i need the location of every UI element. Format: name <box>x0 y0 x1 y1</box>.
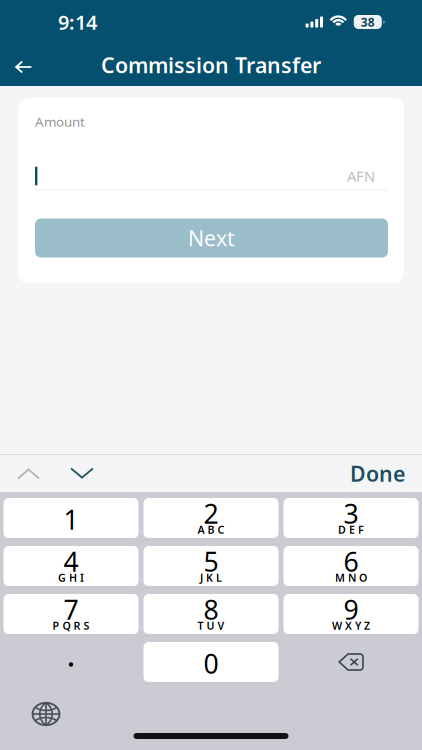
staticText: P Q R S <box>52 618 89 633</box>
button[interactable]: Delete <box>283 642 418 682</box>
button[interactable]: Previous field <box>0 455 55 492</box>
staticText: 4 <box>63 544 78 579</box>
button[interactable]: 1 <box>3 498 138 538</box>
staticText: 2 <box>203 496 218 531</box>
staticText: AFN <box>347 166 375 186</box>
staticText: T U V <box>197 618 224 633</box>
button[interactable]: 2 <box>143 498 278 538</box>
staticText: Done <box>350 459 405 488</box>
button[interactable]: 9 <box>283 594 418 634</box>
button[interactable]: 4 <box>3 546 138 586</box>
staticText: 7 <box>63 592 78 627</box>
staticText: 3 <box>343 496 358 531</box>
staticText: G H I <box>58 570 84 585</box>
staticText: 1 <box>63 502 78 537</box>
button[interactable]: Done <box>333 450 422 497</box>
button[interactable]: 5 <box>143 546 278 586</box>
staticText: 38 <box>361 14 375 30</box>
button[interactable]: 6 <box>283 546 418 586</box>
staticText: M N O <box>335 570 367 585</box>
button[interactable]: Next field <box>55 455 109 492</box>
staticText: D E F <box>338 522 364 537</box>
button[interactable]: Switch keyboard <box>21 692 70 736</box>
button[interactable]: 8 <box>143 594 278 634</box>
button[interactable]: Next <box>35 218 388 257</box>
button[interactable]: 7 <box>3 594 138 634</box>
staticText: 6 <box>343 544 358 579</box>
staticText: 8 <box>203 592 218 627</box>
staticText: J K L <box>200 570 222 585</box>
staticText: Amount <box>35 113 85 130</box>
staticText: Next <box>188 224 235 252</box>
staticText: 9:14 <box>58 9 97 35</box>
staticText: W X Y Z <box>332 618 370 633</box>
staticText: 5 <box>203 544 218 579</box>
staticText: 9 <box>343 592 358 627</box>
staticText: A B C <box>197 522 224 537</box>
staticText: Commission Transfer <box>101 51 321 79</box>
button[interactable]: 3 <box>283 498 418 538</box>
button[interactable]: Back <box>0 45 44 85</box>
button[interactable]: 0 <box>143 642 278 682</box>
staticText: 0 <box>203 646 218 681</box>
button[interactable]: Decimal point <box>3 642 138 682</box>
